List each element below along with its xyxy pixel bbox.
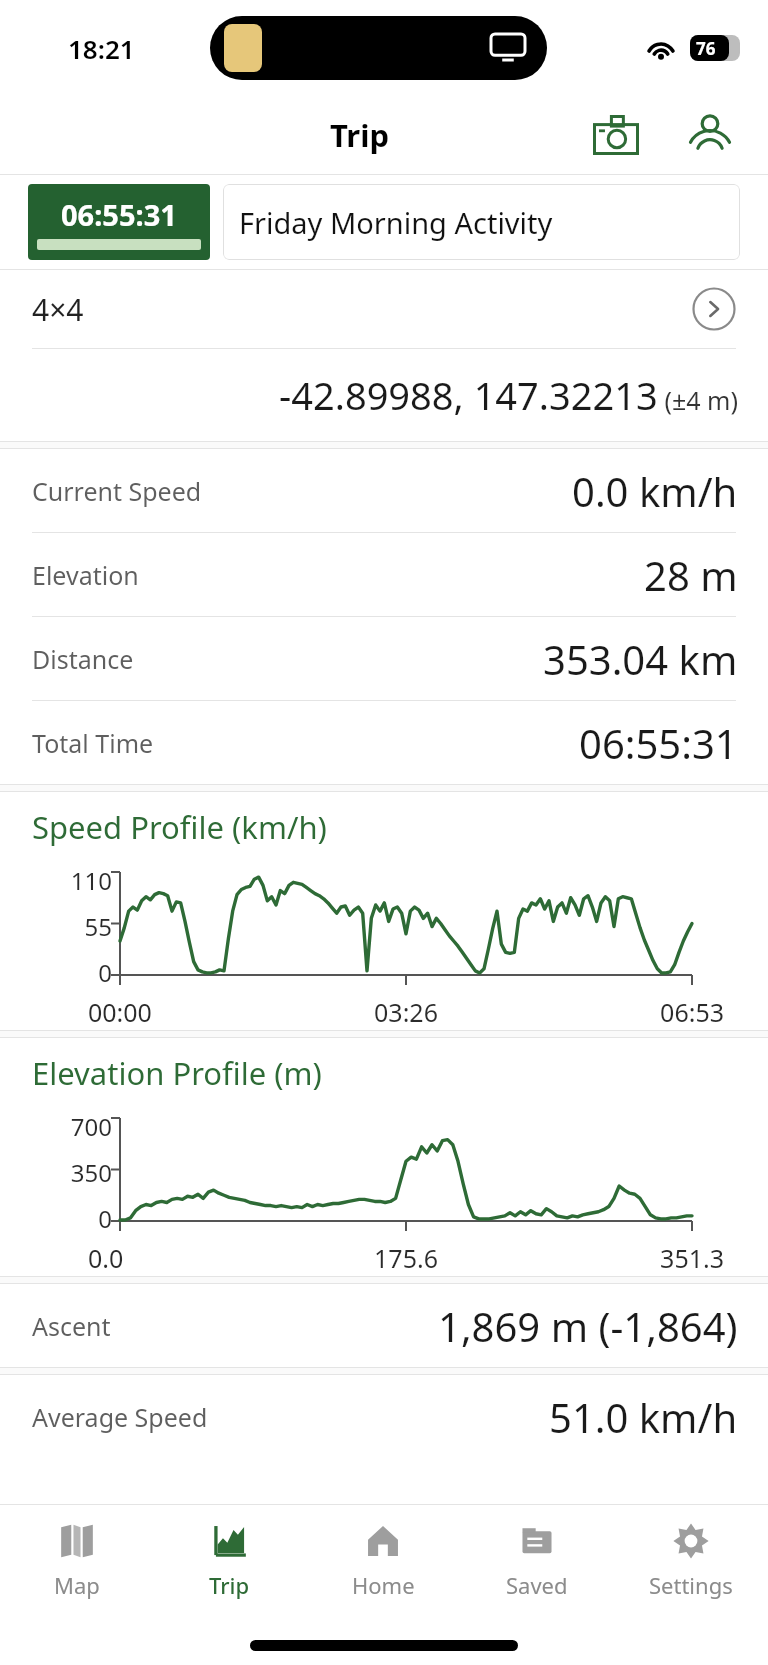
button[interactable]: Trip: [153, 1505, 306, 1613]
button[interactable]: Home: [306, 1505, 460, 1613]
button[interactable]: Current Speed: [0, 449, 768, 532]
staticText: 55: [48, 910, 112, 943]
staticText: 03:26: [300, 995, 512, 1029]
staticText: Home: [352, 1570, 415, 1600]
staticText: Saved: [506, 1570, 568, 1600]
staticText: Total Time: [32, 726, 154, 760]
staticText: Distance: [32, 642, 134, 676]
staticText: Ascent: [32, 1309, 111, 1343]
staticText: Elevation Profile (m): [32, 1052, 322, 1094]
staticText: 1,869 m (-1,864): [438, 1299, 738, 1353]
button[interactable]: Total Time: [0, 701, 768, 784]
button[interactable]: Friday Morning Activity: [223, 184, 740, 260]
staticText: 06:55:31: [61, 195, 177, 234]
button[interactable]: Saved: [460, 1505, 614, 1613]
staticText: Speed Profile (km/h): [32, 806, 327, 848]
button[interactable]: Map: [0, 1505, 153, 1613]
button[interactable]: Settings: [614, 1505, 768, 1613]
staticText: 351.3: [512, 1241, 724, 1275]
staticText: Trip: [209, 1570, 250, 1600]
staticText: 06:53: [512, 995, 724, 1029]
staticText: Average Speed: [32, 1400, 208, 1434]
other: Expand: [692, 287, 736, 331]
staticText: 06:55:31: [579, 716, 738, 770]
staticText: 28 m: [644, 548, 738, 602]
button[interactable]: 06:55:31: [28, 184, 210, 260]
staticText: 51.0 km/h: [549, 1390, 738, 1444]
staticText: -42.89988, 147.32213: [279, 369, 658, 421]
button[interactable]: Elevation: [0, 533, 768, 616]
button[interactable]: Distance: [0, 617, 768, 700]
button[interactable]: -42.89988, 147.32213: [0, 349, 768, 441]
staticText: 353.04 km: [543, 632, 738, 686]
staticText: 700: [48, 1110, 112, 1143]
staticText: (±4 m): [658, 383, 738, 417]
staticText: 18:21: [68, 31, 135, 66]
staticText: 110: [48, 864, 112, 897]
staticText: 00:00: [88, 995, 300, 1029]
staticText: 350: [48, 1156, 112, 1189]
staticText: Settings: [649, 1570, 733, 1600]
button[interactable]: Average Speed: [0, 1375, 768, 1458]
staticText: Current Speed: [32, 474, 202, 508]
staticText: 76: [696, 37, 716, 60]
button[interactable]: Broadcast: [678, 103, 742, 167]
staticText: Friday Morning Activity: [239, 203, 553, 242]
staticText: Map: [54, 1570, 100, 1600]
staticText: 0.0: [88, 1241, 300, 1275]
staticText: 175.6: [300, 1241, 512, 1275]
button[interactable]: Camera: [584, 103, 648, 167]
button[interactable]: 4×4: [0, 270, 768, 348]
button[interactable]: Ascent: [0, 1284, 768, 1367]
staticText: Elevation: [32, 558, 139, 592]
staticText: 0.0 km/h: [572, 464, 738, 518]
staticText: 0: [48, 956, 112, 989]
staticText: Trip: [330, 114, 390, 156]
staticText: 0: [48, 1202, 112, 1235]
staticText: 4×4: [32, 289, 84, 330]
